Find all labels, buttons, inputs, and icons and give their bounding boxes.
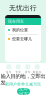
staticText: 快车 [6, 70, 12, 74]
button[interactable]: 立即叫车 [17, 88, 30, 95]
staticText: 您要去哪儿 [12, 36, 32, 41]
staticText: 立即叫车 [18, 85, 28, 98]
staticText: 现在用车 [8, 19, 24, 24]
staticText: 专车 [15, 70, 21, 74]
staticText: 无忧出行 [9, 4, 37, 12]
staticText: 顺风车 [33, 70, 42, 74]
staticText: 拼车 [25, 70, 31, 74]
staticText: 输入目的地，立即出发 [0, 73, 45, 86]
staticText: 我的位置 [12, 27, 28, 32]
staticText: 新用户首单立减10元 [5, 81, 41, 87]
